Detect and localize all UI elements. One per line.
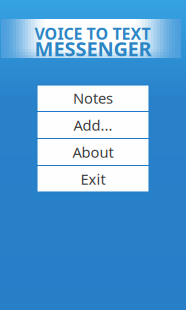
staticText: Notes xyxy=(73,88,113,108)
button[interactable]: Add... xyxy=(37,112,149,138)
button[interactable]: Notes xyxy=(37,85,149,111)
staticText: MESSENGER xyxy=(34,35,151,62)
staticText: Exit xyxy=(80,169,105,189)
button[interactable]: About xyxy=(37,139,149,165)
staticText: About xyxy=(72,142,113,162)
staticText: VOICE TO TEXT xyxy=(34,23,150,44)
staticText: Add... xyxy=(73,115,112,135)
button[interactable]: Exit xyxy=(37,166,149,192)
